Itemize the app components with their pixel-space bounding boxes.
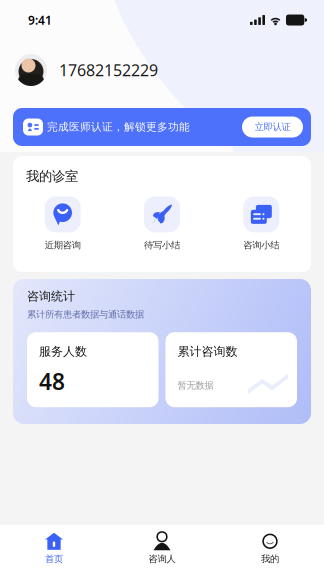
- staticText: 17682152229: [59, 59, 158, 81]
- staticText: 暂无数据: [177, 380, 213, 391]
- button[interactable]: 咨询人: [108, 525, 216, 576]
- staticText: 累计咨询数: [177, 344, 237, 359]
- button[interactable]: 咨询小结: [212, 196, 311, 251]
- staticText: 咨询统计: [27, 289, 75, 304]
- button[interactable]: 近期咨询: [13, 196, 112, 251]
- button[interactable]: 首页: [0, 525, 108, 576]
- staticText: 首页: [45, 553, 63, 565]
- staticText: 待写小结: [144, 239, 180, 251]
- staticText: 9:41: [28, 12, 52, 28]
- button[interactable]: 立即认证: [242, 116, 303, 137]
- staticText: 咨询小结: [243, 239, 279, 251]
- staticText: 我的: [261, 553, 279, 565]
- staticText: 累计所有患者数据与通话数据: [27, 309, 144, 320]
- button[interactable]: 待写小结: [112, 196, 212, 251]
- staticText: 48: [39, 366, 65, 396]
- staticText: 我的诊室: [26, 168, 78, 184]
- staticText: 咨询人: [148, 553, 175, 565]
- staticText: 近期咨询: [45, 239, 81, 251]
- staticText: 完成医师认证，解锁更多功能: [47, 120, 190, 133]
- staticText: 立即认证: [254, 121, 290, 133]
- staticText: 服务人数: [39, 344, 87, 359]
- button[interactable]: 我的: [216, 525, 324, 576]
